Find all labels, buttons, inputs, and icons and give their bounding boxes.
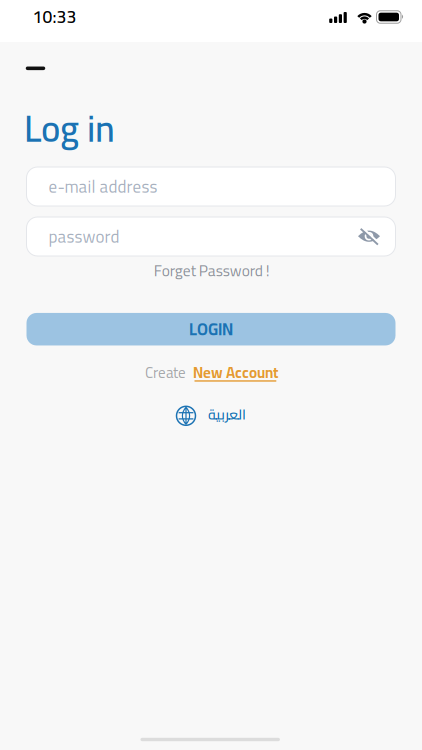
staticText: password bbox=[48, 221, 119, 252]
button[interactable]: LOGIN bbox=[26, 313, 395, 345]
staticText: 10:33 bbox=[32, 0, 76, 33]
button[interactable]: Forget Password ! bbox=[154, 256, 270, 285]
button[interactable]: Create bbox=[145, 358, 278, 387]
staticText: Create bbox=[145, 358, 186, 387]
staticText: LOGIN bbox=[189, 314, 233, 345]
button[interactable]: password bbox=[26, 217, 395, 256]
button[interactable]: e-mail address bbox=[26, 167, 395, 206]
staticText: Forget Password ! bbox=[154, 256, 270, 285]
staticText: New Account bbox=[193, 358, 278, 387]
staticText: Log in bbox=[24, 94, 115, 163]
button[interactable]: Switch language to Arabic bbox=[176, 403, 245, 429]
staticText: العربية bbox=[207, 401, 245, 427]
staticText: e-mail address bbox=[48, 171, 157, 202]
